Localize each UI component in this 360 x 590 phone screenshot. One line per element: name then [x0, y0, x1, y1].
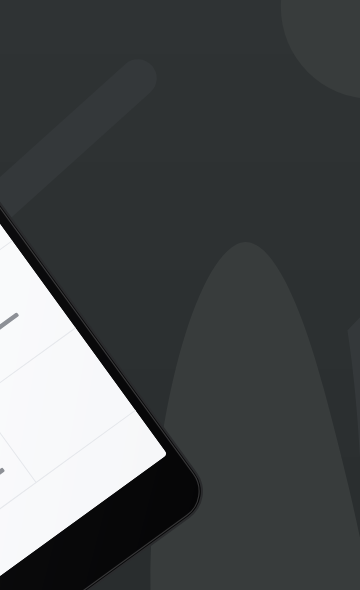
- button[interactable]: App promotional background with tilted p…: [0, 0, 360, 590]
